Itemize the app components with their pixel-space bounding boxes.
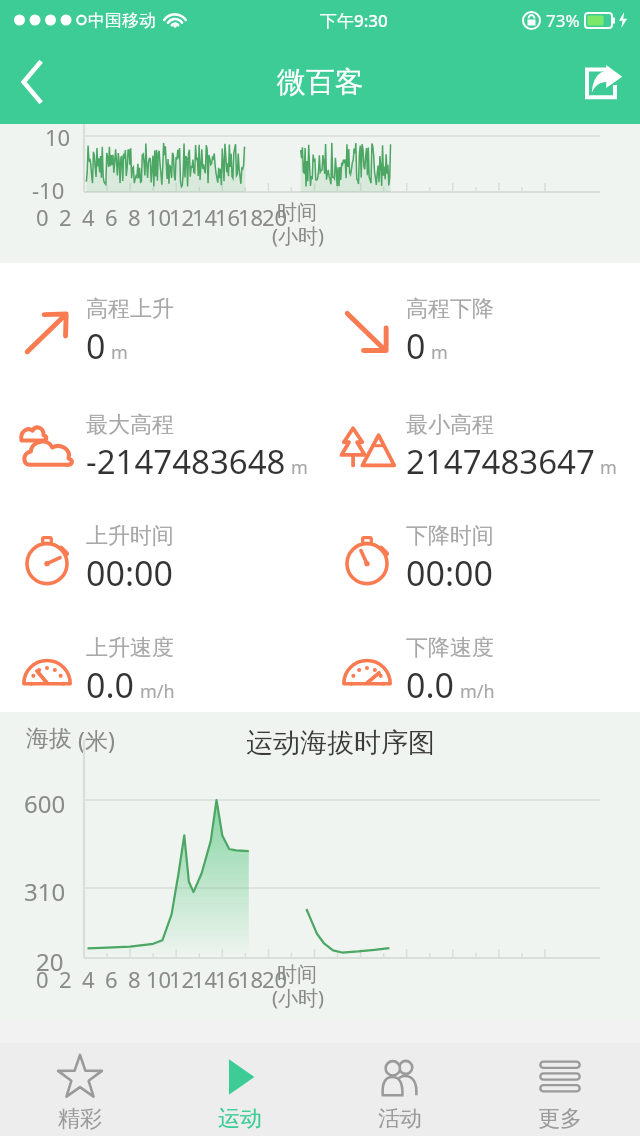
staticText: 10 [146, 964, 172, 994]
staticText: 18 [238, 202, 264, 232]
staticText: 时间 [277, 200, 317, 225]
staticText: (小时) [272, 222, 324, 249]
button[interactable]: 更多 [480, 1043, 640, 1136]
staticText: 精彩 [58, 1105, 102, 1133]
staticText: 20 [262, 202, 288, 232]
staticText: 微百客 [277, 64, 364, 101]
button[interactable]: 最大高程 [18, 411, 320, 484]
staticText: -10 [32, 175, 65, 205]
staticText: (米) [78, 724, 115, 755]
staticText: m/h [140, 679, 175, 704]
button[interactable]: 上升时间 [18, 522, 320, 596]
button[interactable]: 上升速度 [18, 634, 320, 708]
staticText: -2147483648 [86, 439, 286, 484]
staticText: 16 [215, 202, 241, 232]
staticText: 2 [59, 964, 72, 994]
button[interactable]: Back [0, 40, 64, 124]
staticText: 0 [36, 202, 49, 232]
staticText: 中国移动 [88, 10, 156, 31]
staticText: 上升时间 [86, 522, 174, 550]
button[interactable]: 精彩 [0, 1043, 160, 1136]
staticText: 00:00 [86, 550, 173, 596]
staticText: 0.0 [86, 662, 135, 708]
staticText: 下降速度 [406, 634, 494, 662]
staticText: 14 [192, 964, 218, 994]
staticText: 运动 [218, 1105, 262, 1133]
staticText: 16 [215, 964, 241, 994]
staticText: 更多 [538, 1105, 582, 1133]
staticText: 最小高程 [406, 411, 494, 439]
staticText: 时间 [277, 962, 317, 987]
staticText: 2 [59, 202, 72, 232]
staticText: 8 [128, 964, 141, 994]
staticText: 活动 [378, 1105, 422, 1133]
staticText: 下午9:30 [320, 9, 388, 32]
staticText: 4 [82, 964, 95, 994]
staticText: 0 [406, 323, 426, 369]
staticText: 20 [262, 964, 288, 994]
staticText: 0 [36, 964, 49, 994]
staticText: 运动海拔时序图 [246, 726, 435, 760]
staticText: 0 [86, 323, 106, 369]
staticText: 18 [238, 964, 264, 994]
staticText: 00:00 [406, 550, 493, 596]
staticText: 4 [82, 202, 95, 232]
staticText: 6 [105, 202, 118, 232]
button[interactable]: 最小高程 [338, 411, 640, 484]
staticText: 310 [24, 875, 66, 908]
staticText: 下降时间 [406, 522, 494, 550]
button[interactable]: 下降速度 [338, 634, 640, 708]
staticText: 2147483647 [406, 439, 595, 484]
staticText: 600 [24, 787, 66, 820]
staticText: 上升速度 [86, 634, 174, 662]
staticText: 10 [146, 202, 172, 232]
staticText: 0.0 [406, 662, 455, 708]
button[interactable]: 下降时间 [338, 522, 640, 596]
staticText: 12 [169, 202, 195, 232]
button[interactable]: 高程下降 [338, 295, 640, 369]
button[interactable]: Share [566, 40, 640, 124]
staticText: (小时) [272, 984, 324, 1011]
staticText: 8 [128, 202, 141, 232]
staticText: m/h [460, 679, 495, 704]
staticText: m [291, 455, 308, 480]
staticText: 12 [169, 964, 195, 994]
button[interactable]: 运动 [160, 1043, 320, 1136]
staticText: 高程上升 [86, 295, 174, 323]
staticText: m [600, 455, 617, 480]
staticText: 73% [546, 9, 580, 32]
staticText: 6 [105, 964, 118, 994]
staticText: 海拔 [26, 724, 72, 753]
staticText: 14 [192, 202, 218, 232]
staticText: m [431, 340, 448, 365]
button[interactable]: 活动 [320, 1043, 480, 1136]
staticText: 最大高程 [86, 411, 174, 439]
staticText: 高程下降 [406, 295, 494, 323]
staticText: 20 [36, 945, 64, 978]
staticText: 10 [45, 122, 71, 152]
staticText: m [111, 340, 128, 365]
button[interactable]: 高程上升 [18, 295, 320, 369]
